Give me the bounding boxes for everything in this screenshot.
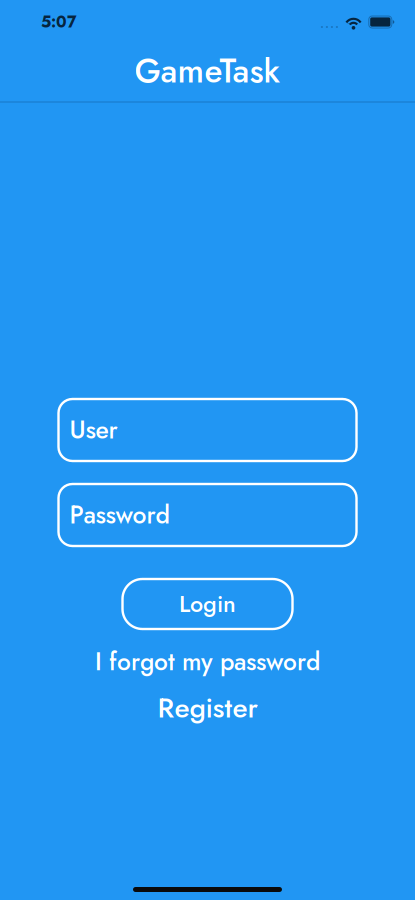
staticText: I forgot my password [95,644,320,679]
staticText: Login [179,587,236,621]
staticText: 5:07 [41,10,77,33]
button[interactable]: Login [122,579,292,629]
staticText: GameTask [134,47,280,95]
staticText: Password [69,497,170,533]
button[interactable]: Register [157,684,257,731]
staticText: Register [157,687,257,728]
staticText: User [69,412,117,448]
button[interactable]: User [58,399,356,461]
button[interactable]: I forgot my password [95,641,320,682]
button[interactable]: Password [58,484,356,546]
